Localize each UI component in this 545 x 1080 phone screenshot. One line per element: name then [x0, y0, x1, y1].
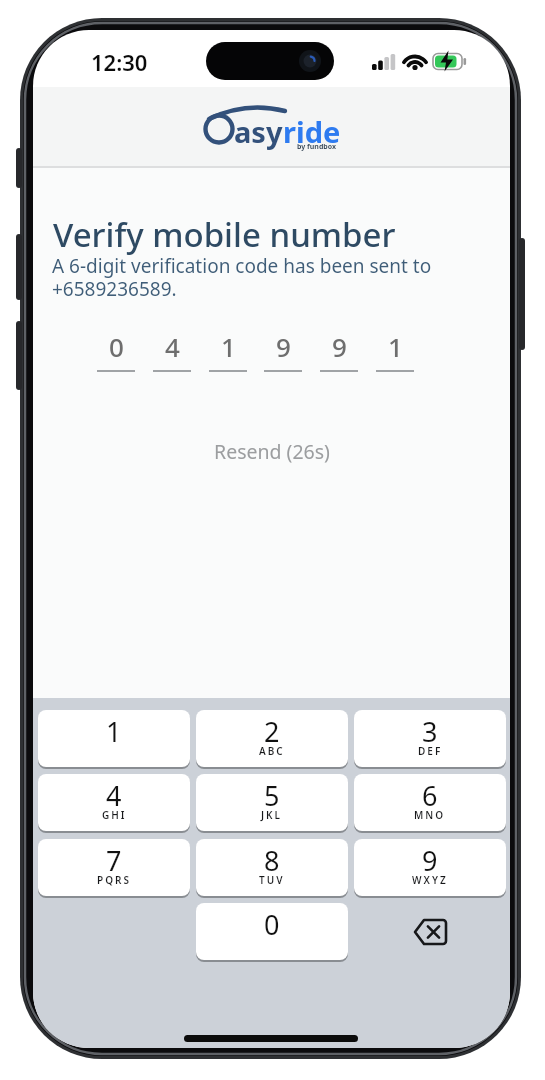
button[interactable]: 9 [354, 839, 506, 896]
button[interactable]: 1 [209, 329, 247, 369]
staticText: 2 [264, 713, 280, 750]
staticText: WXYZ [412, 873, 448, 887]
staticText: 4 [106, 777, 122, 814]
staticText: asy [234, 112, 283, 151]
staticText: GHI [102, 808, 127, 822]
button[interactable]: 0 [97, 329, 135, 369]
button[interactable]: 1 [38, 710, 190, 767]
button[interactable]: Resend (26s) [214, 438, 330, 465]
button[interactable]: 0 [196, 903, 348, 960]
button[interactable]: 4 [38, 774, 190, 831]
staticText: 12:30 [91, 47, 148, 77]
button[interactable]: 9 [264, 329, 302, 369]
staticText: 3 [422, 713, 438, 750]
staticText: ride [283, 112, 341, 151]
staticText: 9 [422, 842, 438, 879]
staticText: 0 [264, 906, 280, 943]
button[interactable]: 7 [38, 839, 190, 896]
staticText: A 6-digit verification code has been sen… [52, 253, 432, 302]
staticText: 9 [332, 329, 347, 364]
staticText: 5 [264, 777, 280, 814]
staticText: 7 [106, 842, 122, 879]
staticText: TUV [259, 873, 285, 887]
staticText: DEF [418, 744, 443, 758]
staticText: MNO [414, 808, 446, 822]
staticText: JKL [261, 808, 283, 822]
button[interactable]: 8 [196, 839, 348, 896]
staticText: 0 [109, 329, 124, 364]
button[interactable] [395, 908, 467, 956]
staticText: by fundbox [297, 142, 337, 152]
button[interactable]: 2 [196, 710, 348, 767]
button[interactable]: 9 [320, 329, 358, 369]
staticText: 1 [388, 329, 403, 364]
button[interactable]: 4 [153, 329, 191, 369]
staticText: 1 [221, 329, 236, 364]
staticText: 8 [264, 842, 280, 879]
staticText: Verify mobile number [53, 212, 396, 257]
staticText: 1 [106, 713, 122, 750]
staticText: PQRS [97, 873, 131, 887]
button[interactable]: 6 [354, 774, 506, 831]
button[interactable]: 3 [354, 710, 506, 767]
button[interactable]: 1 [376, 329, 414, 369]
staticText: 9 [276, 329, 291, 364]
staticText: 6 [422, 777, 438, 814]
button[interactable]: 5 [196, 774, 348, 831]
staticText: ABC [259, 744, 285, 758]
staticText: 4 [165, 329, 180, 364]
